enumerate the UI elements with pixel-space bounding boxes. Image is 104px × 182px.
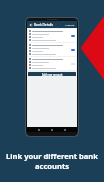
button[interactable]: Primary account [71,49,75,51]
button[interactable]: Primary account [28,43,76,56]
button[interactable]: Primary account [71,35,75,37]
staticText: Add new account [42,73,63,76]
button[interactable]: Set primary [28,57,76,70]
staticText: 1:48 PM [65,23,75,26]
button[interactable]: Add new account [28,72,76,76]
button[interactable]: Primary account [28,29,76,42]
staticText: Bank Details [34,23,53,27]
staticText: Link your different bank accounts [6,151,98,171]
button[interactable]: Back [29,23,32,26]
